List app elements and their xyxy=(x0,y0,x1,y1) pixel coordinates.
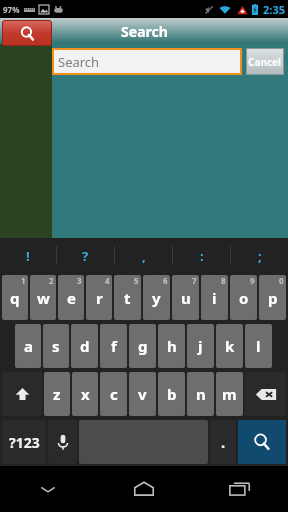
staticText: 9 xyxy=(250,275,255,286)
staticText: u xyxy=(181,288,191,308)
button[interactable]: r xyxy=(86,275,112,320)
staticText: 2 xyxy=(49,275,54,286)
button[interactable]: a xyxy=(15,324,41,368)
button[interactable]: k xyxy=(216,324,243,368)
button[interactable]: ? xyxy=(57,238,114,273)
button[interactable]: Cancel xyxy=(246,48,284,75)
staticText: 97% xyxy=(3,4,20,15)
button[interactable]: Search xyxy=(2,20,52,46)
staticText: : xyxy=(200,247,204,265)
staticText: w xyxy=(37,288,50,308)
staticText: a xyxy=(24,336,33,356)
button[interactable]: ! xyxy=(0,238,56,273)
staticText: i xyxy=(212,288,217,308)
staticText: Search xyxy=(121,22,168,41)
staticText: 7 xyxy=(192,275,197,286)
button[interactable]: x xyxy=(72,372,98,416)
staticText: ; xyxy=(258,247,262,265)
button[interactable]: q xyxy=(2,275,28,320)
staticText: r xyxy=(96,288,103,308)
button[interactable]: t xyxy=(114,275,141,320)
staticText: 3 xyxy=(77,275,82,286)
staticText: . xyxy=(221,432,226,452)
button[interactable]: l xyxy=(245,324,272,368)
staticText: ! xyxy=(26,247,30,265)
button[interactable]: n xyxy=(187,372,214,416)
staticText: z xyxy=(53,384,61,404)
button[interactable]: o xyxy=(230,275,257,320)
button[interactable]: y xyxy=(143,275,170,320)
staticText: Search xyxy=(58,53,100,71)
staticText: y xyxy=(152,288,161,308)
button[interactable]: w xyxy=(30,275,56,320)
staticText: x xyxy=(81,384,90,404)
button[interactable]: g xyxy=(129,324,156,368)
staticText: f xyxy=(111,336,117,356)
button[interactable]: j xyxy=(187,324,214,368)
button[interactable]: Home xyxy=(96,466,192,512)
staticText: ? xyxy=(82,247,89,265)
button[interactable]: , xyxy=(115,238,172,273)
staticText: 8 xyxy=(221,275,226,286)
button[interactable]: d xyxy=(71,324,98,368)
staticText: ?123 xyxy=(9,433,40,452)
staticText: c xyxy=(110,384,118,404)
staticText: v xyxy=(138,384,147,404)
button[interactable]: c xyxy=(100,372,127,416)
button[interactable]: m xyxy=(216,372,243,416)
staticText: o xyxy=(239,288,249,308)
button[interactable]: Period xyxy=(210,420,236,464)
button[interactable]: i xyxy=(201,275,228,320)
button[interactable]: Hide keyboard xyxy=(0,466,96,512)
button[interactable]: h xyxy=(158,324,185,368)
staticText: t xyxy=(124,288,131,308)
button[interactable]: b xyxy=(158,372,185,416)
staticText: 5 xyxy=(134,275,139,286)
staticText: b xyxy=(167,384,177,404)
button[interactable]: Voice input xyxy=(48,420,77,464)
staticText: m xyxy=(222,384,237,404)
staticText: q xyxy=(10,288,20,308)
staticText: l xyxy=(256,336,261,356)
button[interactable]: Shift xyxy=(2,372,42,416)
button[interactable]: Search xyxy=(52,48,242,75)
staticText: Cancel xyxy=(248,55,282,69)
button[interactable]: : xyxy=(173,238,230,273)
staticText: d xyxy=(80,336,90,356)
button[interactable]: Backspace xyxy=(245,372,286,416)
button[interactable]: u xyxy=(172,275,199,320)
staticText: 2:35 xyxy=(263,2,285,17)
button[interactable]: f xyxy=(100,324,127,368)
staticText: 1 xyxy=(21,275,26,286)
staticText: 0 xyxy=(279,275,284,286)
staticText: 4 xyxy=(105,275,110,286)
staticText: g xyxy=(138,336,148,356)
staticText: p xyxy=(268,288,278,308)
staticText: e xyxy=(67,288,76,308)
button[interactable]: Recent apps xyxy=(192,466,288,512)
button[interactable]: ; xyxy=(231,238,288,273)
button[interactable]: s xyxy=(43,324,69,368)
button[interactable]: p xyxy=(259,275,286,320)
staticText: h xyxy=(167,336,177,356)
button[interactable]: z xyxy=(44,372,70,416)
staticText: j xyxy=(198,336,203,356)
button[interactable]: Search xyxy=(238,420,286,464)
staticText: k xyxy=(225,336,235,356)
button[interactable]: v xyxy=(129,372,156,416)
staticText: n xyxy=(196,384,206,404)
staticText: s xyxy=(52,336,60,356)
button[interactable]: e xyxy=(58,275,84,320)
staticText: , xyxy=(142,247,146,265)
button[interactable]: Symbols xyxy=(2,420,46,464)
staticText: 6 xyxy=(163,275,168,286)
